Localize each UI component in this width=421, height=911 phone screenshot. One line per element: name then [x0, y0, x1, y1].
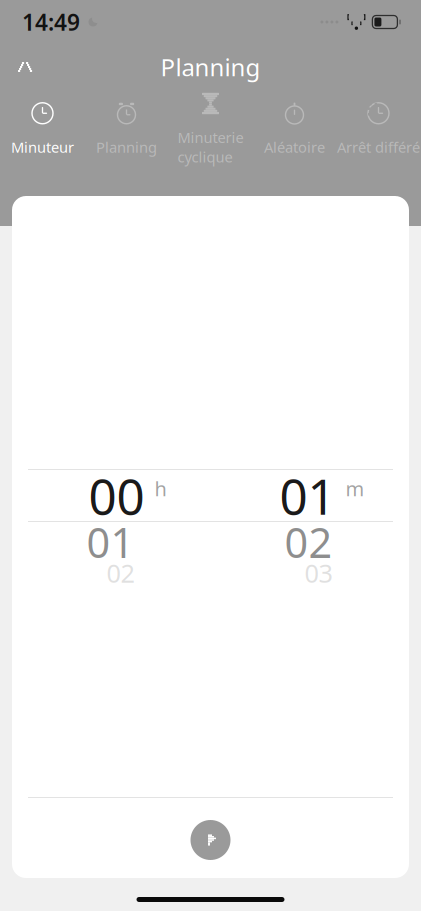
staticText: 02 — [106, 556, 134, 590]
button[interactable]: Minuterie cyclique — [168, 96, 252, 160]
button[interactable]: Aléatoire — [252, 96, 336, 160]
staticText: m — [345, 475, 364, 502]
button[interactable]: Start timer — [188, 818, 232, 862]
staticText: 02 — [284, 515, 332, 569]
button[interactable]: Back — [2, 45, 46, 89]
staticText: 14:49 — [22, 7, 80, 37]
staticText: h — [154, 475, 166, 502]
staticText: Aléatoire — [264, 137, 325, 157]
staticText: Planning — [160, 51, 260, 83]
button[interactable]: Minuteur — [0, 96, 84, 160]
button[interactable]: Arrêt différé — [336, 96, 420, 160]
staticText: Arrêt différé — [337, 137, 420, 157]
staticText: 01 — [86, 515, 134, 569]
staticText: 01 — [279, 463, 335, 528]
staticText: Planning — [96, 137, 157, 157]
staticText: 03 — [304, 556, 332, 590]
staticText: Minuteur — [11, 137, 74, 157]
button[interactable]: Planning — [84, 96, 168, 160]
staticText: 00 — [88, 463, 144, 528]
staticText: Minuterie cyclique — [177, 127, 243, 166]
